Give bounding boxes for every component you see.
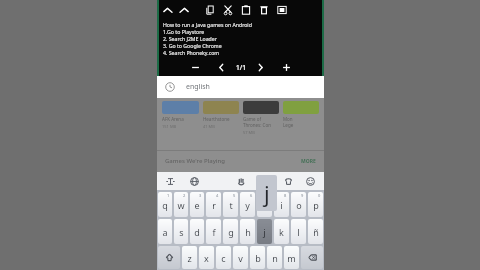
staticText: english — [186, 82, 210, 92]
button[interactable]: Undo — [161, 3, 175, 17]
button[interactable]: Cut — [221, 3, 235, 17]
staticText: o — [296, 199, 302, 211]
staticText: MORE — [301, 158, 316, 165]
button[interactable]: s — [174, 219, 188, 244]
staticText: f — [212, 226, 216, 238]
staticText: c — [221, 252, 226, 264]
button[interactable]: l — [291, 219, 306, 244]
staticText: 3 — [199, 193, 202, 198]
staticText: j — [264, 178, 270, 208]
staticText: ñ — [313, 226, 319, 238]
button[interactable]: Select all — [275, 3, 289, 17]
button[interactable]: AFK Arena — [162, 101, 199, 129]
staticText: e — [194, 199, 200, 211]
staticText: h — [245, 226, 251, 238]
staticText: a — [162, 226, 168, 238]
other: History — [165, 82, 175, 92]
staticText: g — [228, 226, 234, 238]
button[interactable]: History — [165, 76, 210, 98]
button[interactable]: y — [240, 192, 255, 217]
button[interactable]: Increase text size — [279, 60, 294, 75]
staticText: 41 MB — [203, 124, 215, 129]
staticText: 6 — [250, 193, 253, 198]
button[interactable]: v — [233, 246, 248, 269]
staticText: Game of Thrones: Con — [243, 116, 271, 128]
staticText: 3. Go to Google Chrome — [163, 42, 222, 49]
staticText: Games We're Playing — [165, 157, 225, 165]
button[interactable]: Hearthstone — [203, 101, 239, 129]
button[interactable]: Redo — [177, 3, 191, 17]
button[interactable]: Game of Thrones: Con — [243, 101, 279, 135]
button[interactable]: t — [223, 192, 238, 217]
button[interactable]: n — [267, 246, 282, 269]
staticText: 1/1 — [236, 63, 246, 72]
button[interactable]: f — [206, 219, 221, 244]
staticText: 151 MB — [162, 124, 177, 129]
staticText: k — [279, 226, 284, 238]
button[interactable]: Cursor control — [164, 175, 177, 188]
staticText: 4. Search Phoneky.com — [163, 49, 220, 56]
staticText: l — [297, 226, 300, 238]
button[interactable]: Paste — [239, 3, 253, 17]
button[interactable]: Previous page — [214, 60, 229, 75]
staticText: b — [255, 252, 261, 264]
button[interactable]: p — [308, 192, 323, 217]
staticText: 5 — [233, 193, 236, 198]
button[interactable]: Themes — [282, 175, 295, 188]
staticText: i — [280, 199, 283, 211]
staticText: w — [177, 199, 185, 211]
button[interactable]: Next page — [253, 60, 268, 75]
button[interactable]: c — [216, 246, 231, 269]
button[interactable]: Games We're Playing — [165, 151, 316, 171]
staticText: p — [313, 199, 319, 211]
button[interactable]: z — [182, 246, 197, 269]
staticText: j — [263, 226, 266, 238]
staticText: 2. Search J2ME Loader — [163, 35, 217, 42]
button[interactable]: Emoji — [304, 175, 317, 188]
button[interactable]: Backspace — [301, 246, 323, 269]
staticText: Hearthstone — [203, 116, 230, 122]
button[interactable]: b — [250, 246, 265, 269]
staticText: AFK Arena — [162, 116, 184, 122]
button[interactable]: Mon Lege — [283, 101, 319, 135]
button[interactable]: i — [274, 192, 289, 217]
button[interactable]: q — [158, 192, 172, 217]
button[interactable]: u — [257, 192, 272, 217]
staticText: u — [262, 199, 268, 211]
button[interactable]: Decrease text size — [188, 60, 203, 75]
staticText: How to run a Java games on Android — [163, 21, 252, 28]
button[interactable]: a — [158, 219, 172, 244]
button[interactable]: k — [274, 219, 289, 244]
staticText: n — [272, 252, 278, 264]
button[interactable]: w — [174, 192, 188, 217]
button[interactable]: d — [190, 219, 204, 244]
button[interactable]: Delete — [257, 3, 271, 17]
staticText: v — [238, 252, 243, 264]
button[interactable]: x — [199, 246, 214, 269]
staticText: 9 — [301, 193, 304, 198]
staticText: q — [162, 199, 168, 211]
button[interactable]: r — [206, 192, 221, 217]
staticText: d — [194, 226, 200, 238]
staticText: 2 — [183, 193, 186, 198]
button[interactable]: Handwriting — [235, 175, 248, 188]
staticText: z — [187, 252, 192, 264]
staticText: y — [245, 199, 250, 211]
button[interactable]: ñ — [308, 219, 323, 244]
button[interactable]: g — [223, 219, 238, 244]
staticText: 57 MB — [243, 130, 255, 135]
button[interactable]: Shift — [158, 246, 180, 269]
staticText: 1.Go to Playstore — [163, 28, 205, 35]
button[interactable]: o — [291, 192, 306, 217]
staticText: x — [204, 252, 209, 264]
button[interactable]: h — [240, 219, 255, 244]
button[interactable]: Copy — [203, 3, 217, 17]
button[interactable]: e — [190, 192, 204, 217]
staticText: s — [179, 226, 184, 238]
staticText: 4 — [216, 193, 219, 198]
button[interactable]: Language — [188, 175, 201, 188]
button[interactable]: m — [284, 246, 299, 269]
staticText: 1 — [167, 193, 170, 198]
staticText: m — [287, 252, 296, 264]
button[interactable]: j — [257, 219, 272, 244]
